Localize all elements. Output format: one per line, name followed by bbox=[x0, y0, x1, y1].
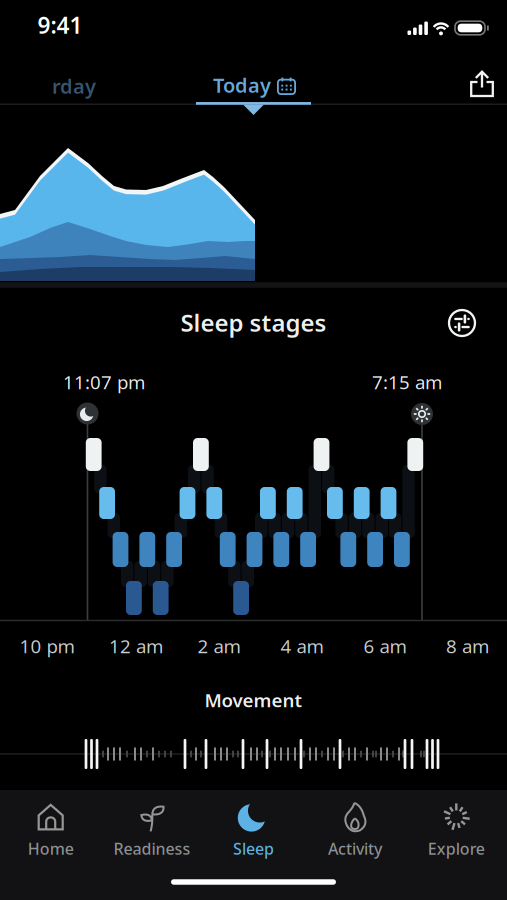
button[interactable]: Share bbox=[464, 64, 500, 103]
staticText: Home bbox=[28, 838, 74, 859]
staticText: 6 am bbox=[363, 634, 406, 658]
staticText: Activity bbox=[328, 838, 382, 859]
staticText: Today bbox=[213, 72, 271, 98]
staticText: 7:15 am bbox=[372, 370, 442, 394]
staticText: 4 am bbox=[280, 634, 323, 658]
staticText: Movement bbox=[204, 688, 302, 712]
staticText: 9:41 bbox=[37, 10, 82, 40]
staticText: 10 pm bbox=[19, 634, 74, 658]
staticText: 2 am bbox=[197, 634, 240, 658]
button[interactable]: Home bbox=[1, 799, 101, 861]
button[interactable]: Readiness bbox=[102, 799, 202, 861]
staticText: 12 am bbox=[109, 634, 163, 658]
button[interactable]: Chart settings bbox=[447, 308, 477, 338]
staticText: 11:07 pm bbox=[63, 370, 145, 394]
staticText: Sleep stages bbox=[180, 307, 326, 338]
staticText: 8 am bbox=[446, 634, 489, 658]
staticText: Explore bbox=[428, 838, 485, 859]
button[interactable]: Explore bbox=[406, 799, 506, 861]
button[interactable]: Activity bbox=[305, 799, 405, 861]
button[interactable]: Sleep bbox=[203, 799, 303, 861]
button[interactable]: rday bbox=[29, 71, 119, 101]
staticText: rday bbox=[52, 73, 96, 99]
staticText: Sleep bbox=[233, 838, 274, 859]
staticText: Readiness bbox=[114, 838, 191, 859]
button[interactable]: Today bbox=[198, 69, 308, 101]
